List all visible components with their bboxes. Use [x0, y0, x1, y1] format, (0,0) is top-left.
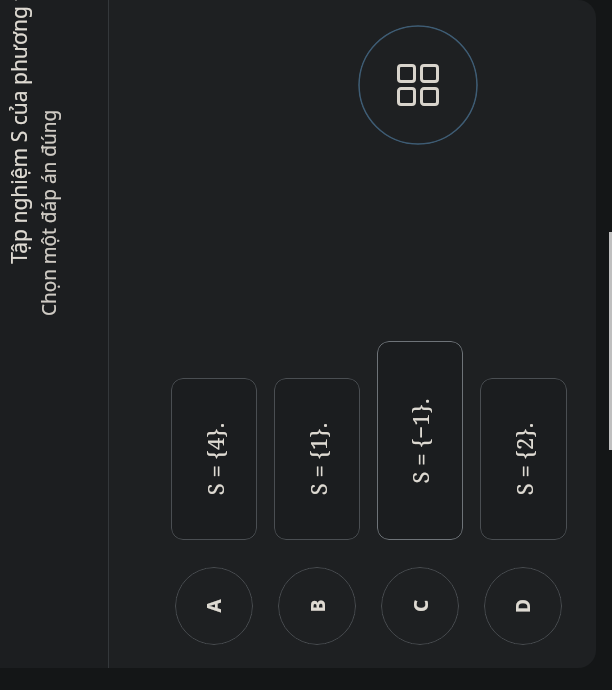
button[interactable]: S = {−1}. [377, 341, 463, 540]
staticText: S = {1}. [302, 422, 332, 495]
staticText: S = {4}. [199, 422, 229, 495]
staticText: Tập nghiệm S của phương trình 2ˣ⁺¹ = 8 l… [5, 0, 45, 320]
button[interactable]: Grid view [358, 25, 478, 145]
staticText: C [407, 599, 433, 612]
staticText: S = {−1}. [405, 398, 435, 484]
staticText: B [304, 599, 330, 612]
staticText: A [201, 599, 227, 613]
button[interactable]: A [175, 567, 253, 645]
button[interactable]: S = {4}. [171, 378, 257, 540]
button[interactable]: C [381, 567, 459, 645]
button[interactable]: B [278, 567, 356, 645]
staticText: D [510, 599, 536, 613]
staticText: S = {2}. [508, 422, 538, 495]
button[interactable]: S = {1}. [274, 378, 360, 540]
staticText: Chọn một đáp án đúng [36, 63, 72, 363]
button[interactable]: S = {2}. [480, 378, 567, 540]
button[interactable]: D [484, 567, 562, 645]
